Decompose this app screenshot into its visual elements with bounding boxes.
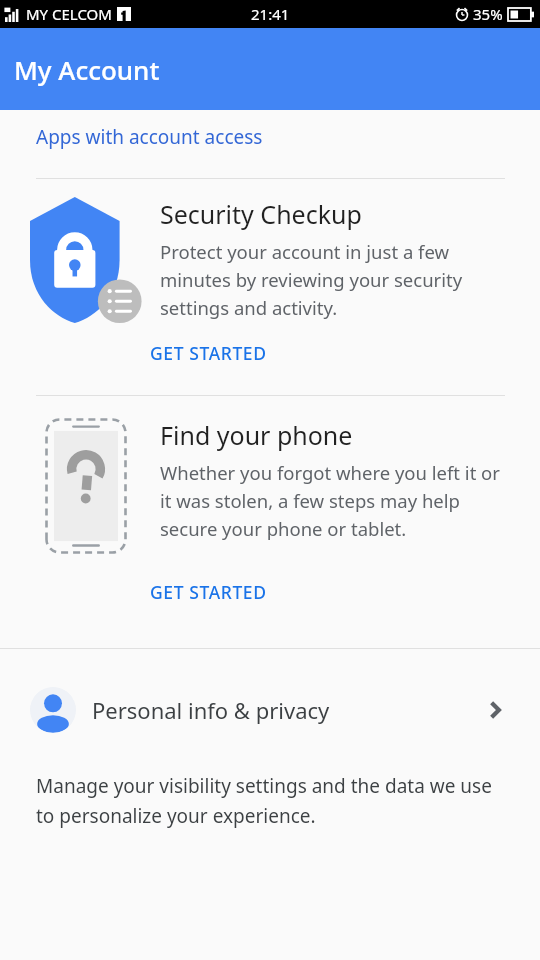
staticText: Protect your account in just a few minut… (160, 239, 508, 320)
staticText: Whether you forgot where you left it or … (160, 460, 508, 541)
staticText: GET STARTED (150, 580, 267, 604)
staticText: GET STARTED (150, 341, 267, 365)
staticText: Security Checkup (160, 197, 362, 231)
staticText: Manage your visibility settings and the … (36, 773, 506, 828)
staticText: Apps with account access (36, 124, 263, 150)
button[interactable]: GET STARTED (150, 333, 295, 373)
button[interactable]: GET STARTED (150, 572, 295, 612)
staticText: 35% (473, 4, 503, 24)
staticText: 21:41 (251, 4, 290, 24)
staticText: Personal info & privacy (92, 695, 330, 725)
staticText: Find your phone (160, 418, 353, 452)
staticText: My Account (14, 52, 160, 87)
staticText: MY CELCOM (26, 4, 112, 24)
button[interactable]: Apps with account access (0, 110, 540, 160)
button[interactable]: Personal info & privacy (0, 649, 540, 751)
